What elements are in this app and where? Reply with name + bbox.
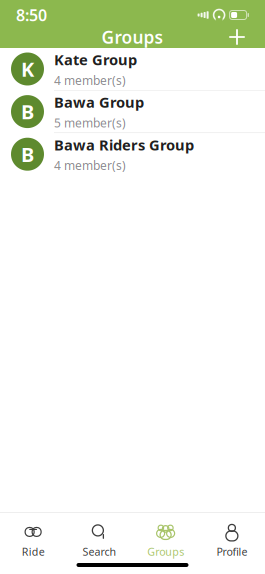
button[interactable]: B: [0, 91, 265, 133]
staticText: 8:50: [16, 4, 47, 26]
staticText: K: [21, 56, 34, 82]
button[interactable]: Ride: [0, 521, 66, 561]
button[interactable]: Search: [66, 521, 132, 561]
staticText: B: [21, 141, 34, 167]
staticText: Ride: [22, 544, 45, 559]
staticText: B: [21, 98, 34, 125]
staticText: Bawa Group: [54, 92, 144, 112]
button[interactable]: K: [0, 48, 265, 91]
staticText: Groups: [147, 544, 184, 559]
button[interactable]: Groups: [132, 521, 199, 561]
button[interactable]: Profile: [199, 521, 265, 561]
staticText: Bawa Riders Group: [54, 135, 194, 154]
staticText: 5 member(s): [54, 115, 126, 131]
staticText: Profile: [216, 544, 247, 559]
button[interactable]: Add Group: [219, 24, 255, 50]
button[interactable]: B: [0, 133, 265, 176]
staticText: 4 member(s): [54, 72, 126, 88]
staticText: 4 member(s): [54, 157, 126, 173]
staticText: Groups: [101, 25, 163, 48]
staticText: Search: [82, 544, 116, 559]
staticText: Kate Group: [54, 50, 137, 69]
